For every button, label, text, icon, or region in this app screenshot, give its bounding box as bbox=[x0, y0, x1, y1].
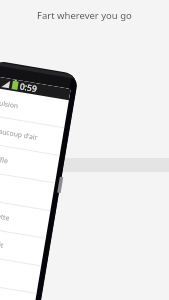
button[interactable]: Fart wherever you go app screenshot bbox=[0, 0, 169, 300]
